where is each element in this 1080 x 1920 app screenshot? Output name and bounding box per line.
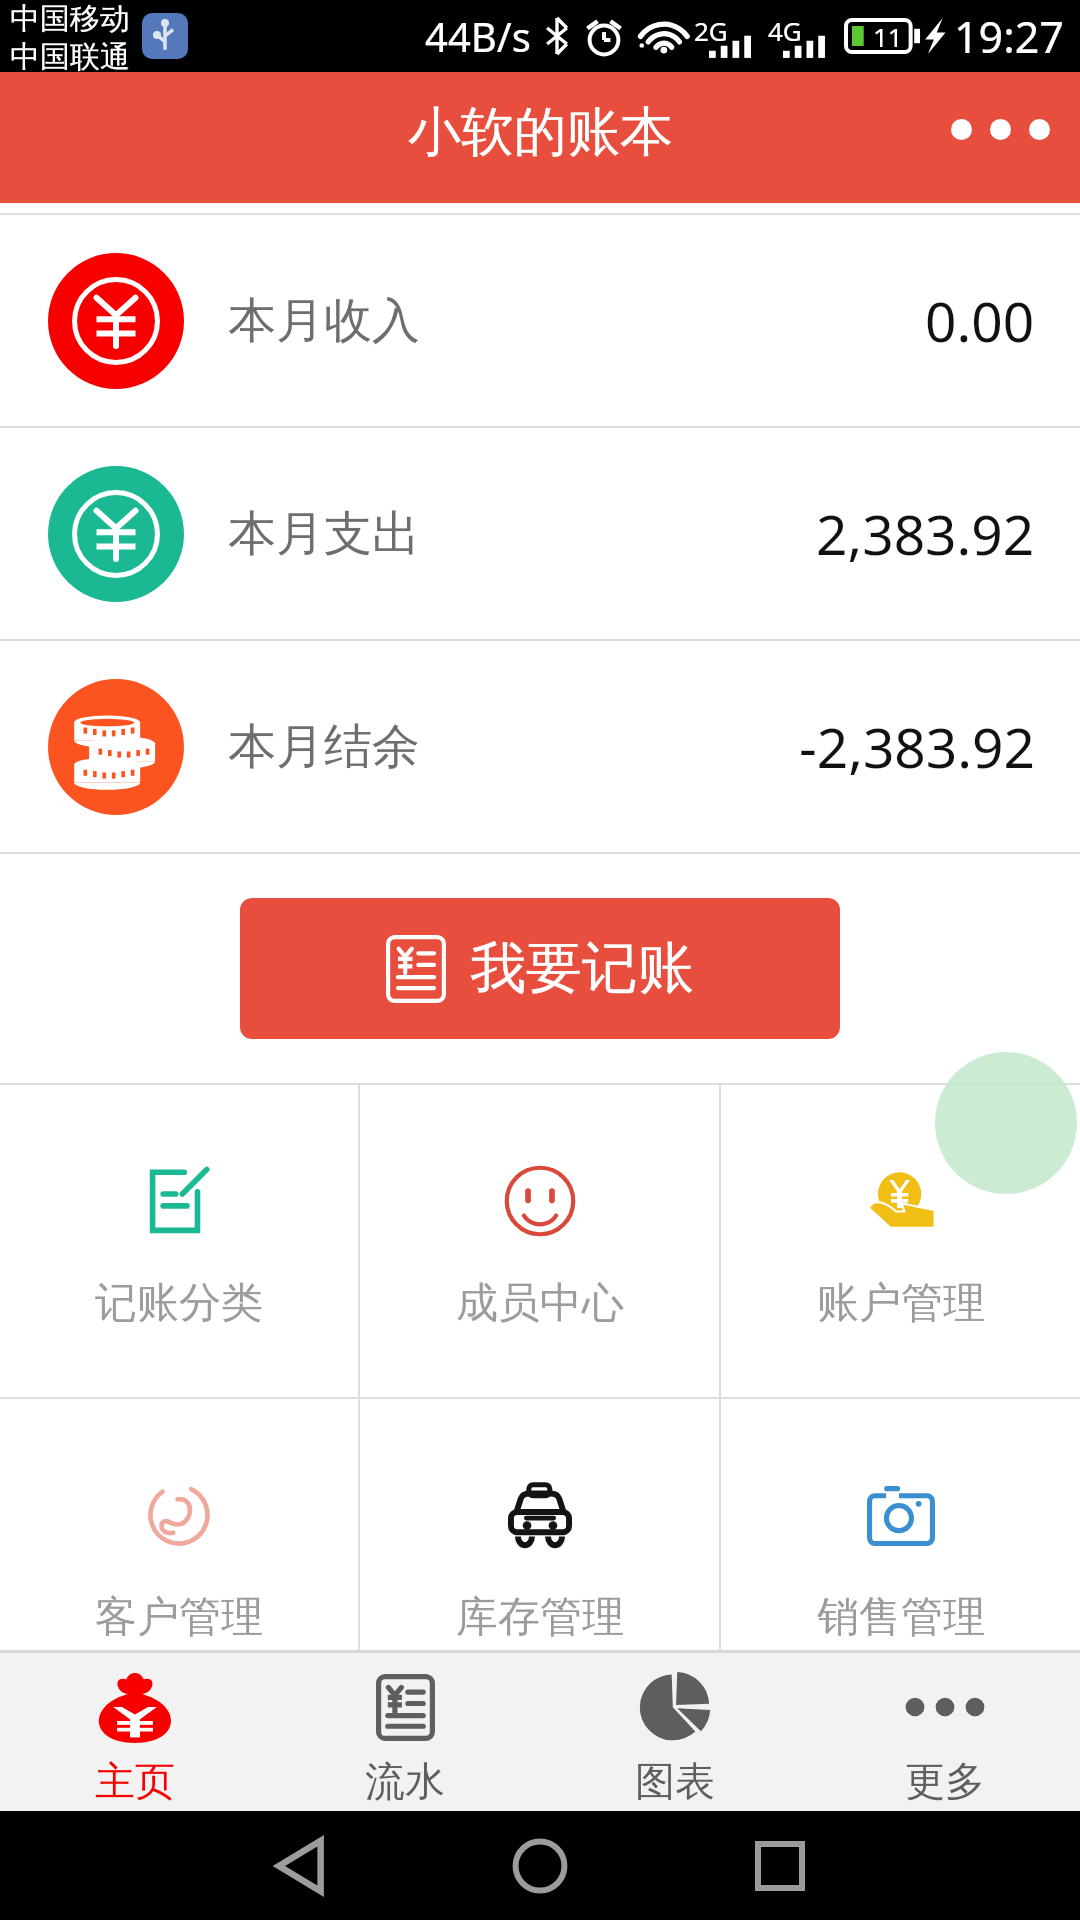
button[interactable]: 更多 (810, 1653, 1080, 1811)
staticText: 44B/s (425, 9, 531, 63)
staticText: 销售管理 (817, 1591, 985, 1644)
staticText: 我要记账 (470, 933, 694, 1004)
staticText: 中国联通 (10, 38, 130, 72)
staticText: 本月支出 (228, 504, 420, 564)
staticText: 更多 (905, 1756, 985, 1806)
button[interactable]: 客户管理 (0, 1399, 358, 1650)
staticText: 4G (768, 13, 802, 48)
button[interactable]: 本月结余 (0, 641, 1080, 852)
button[interactable]: 记账分类 (0, 1085, 358, 1397)
staticText: 小软的账本 (408, 99, 673, 166)
staticText: 本月收入 (228, 291, 420, 351)
staticText: 本月结余 (228, 717, 420, 777)
staticText: 中国移动 (10, 0, 130, 38)
staticText: 记账分类 (95, 1277, 263, 1330)
button[interactable]: 本月支出 (0, 428, 1080, 639)
button[interactable]: 成员中心 (360, 1085, 719, 1397)
staticText: 2G (694, 13, 728, 48)
button[interactable]: 销售管理 (721, 1399, 1080, 1650)
button[interactable]: 图表 (540, 1653, 810, 1811)
button[interactable]: 库存管理 (360, 1399, 719, 1650)
staticText: 客户管理 (95, 1591, 263, 1644)
staticText: 主页 (95, 1756, 175, 1806)
button[interactable]: More options (921, 89, 1080, 170)
button[interactable]: 账户管理 (721, 1085, 1080, 1397)
staticText: 2,383.92 (816, 496, 1035, 571)
staticText: 成员中心 (456, 1277, 624, 1330)
staticText: 流水 (365, 1756, 445, 1806)
button[interactable]: 我要记账 (240, 898, 840, 1039)
button[interactable]: 流水 (270, 1653, 540, 1811)
staticText: 账户管理 (817, 1277, 985, 1330)
staticText: 19:27 (954, 7, 1064, 66)
staticText: 图表 (635, 1756, 715, 1806)
staticText: -2,383.92 (799, 709, 1035, 784)
staticText: 0.00 (925, 283, 1035, 358)
button[interactable]: 主页 (0, 1653, 270, 1811)
button[interactable]: Home (495, 1821, 585, 1911)
button[interactable]: Recents (735, 1821, 825, 1911)
button[interactable]: 本月收入 (0, 215, 1080, 426)
staticText: 库存管理 (456, 1591, 624, 1644)
staticText: 11 (873, 19, 903, 54)
button[interactable]: Back (255, 1821, 345, 1911)
